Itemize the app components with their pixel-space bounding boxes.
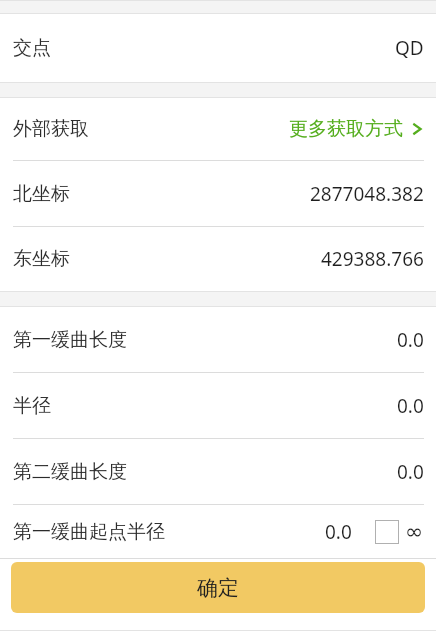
staticText: 东坐标 [13,247,70,271]
button[interactable]: 外部获取 [0,98,436,160]
button[interactable]: 东坐标 [0,227,436,291]
staticText: 0.0 [397,459,424,485]
staticText: 第二缓曲长度 [13,460,127,484]
staticText: 第一缓曲长度 [13,328,127,352]
staticText: QD [395,35,424,61]
staticText: 429388.766 [321,246,424,272]
button[interactable]: 半径 [0,373,436,438]
staticText: 0.0 [397,327,424,353]
staticText: 更多获取方式 [289,117,403,141]
staticText: 0.0 [397,393,424,419]
staticText: 外部获取 [13,117,89,141]
staticText: 北坐标 [13,182,70,206]
staticText: 交点 [13,36,51,60]
staticText: 第一缓曲起点半径 [13,520,165,544]
button[interactable]: 第一缓曲起点半径 [0,505,436,558]
staticText: ∞ [405,519,424,545]
button[interactable]: 交点 [0,14,436,82]
staticText: 2877048.382 [310,181,424,207]
button[interactable]: 第二缓曲长度 [0,439,436,504]
staticText: 半径 [13,394,51,418]
button[interactable]: 北坐标 [0,161,436,226]
button[interactable]: 确定 [11,562,425,613]
button[interactable]: 第一缓曲长度 [0,307,436,372]
button[interactable]: Infinite radius checkbox [375,520,399,544]
staticText: 0.0 [325,519,352,545]
staticText: 确定 [197,575,239,601]
